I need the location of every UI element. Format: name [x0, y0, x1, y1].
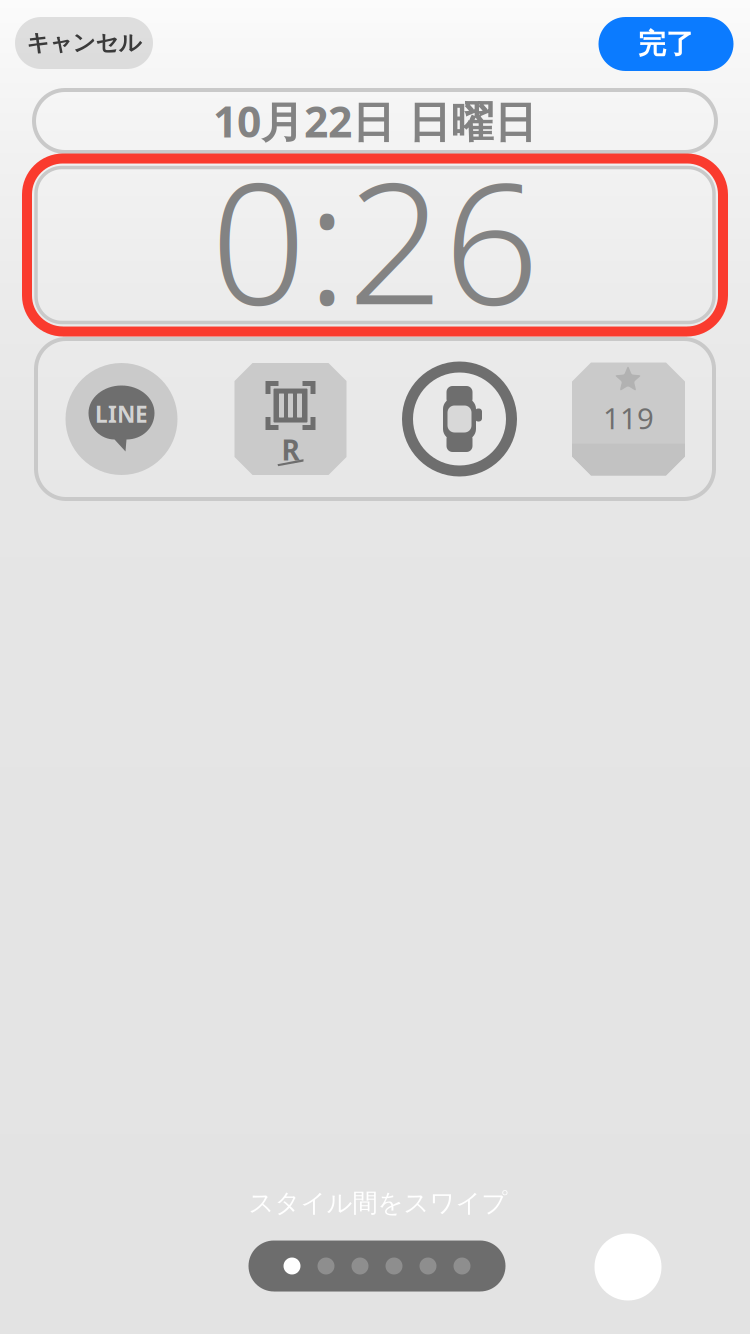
button[interactable]: 10月22日 日曜日	[34, 90, 716, 152]
staticText: LINE	[95, 399, 148, 429]
button[interactable]: Apple Watch	[375, 339, 544, 499]
button[interactable]: 完了	[598, 17, 733, 71]
staticText: R	[281, 431, 299, 468]
button[interactable]: Rakuten Point Card	[206, 339, 375, 499]
button[interactable]: Color	[594, 1233, 661, 1300]
button[interactable]: LINE	[37, 339, 206, 499]
staticText: 10月22日 日曜日	[213, 93, 537, 149]
button[interactable]: 0:26	[27, 158, 723, 331]
staticText: スタイル間をスワイプ	[248, 1187, 507, 1218]
button[interactable]: Emergency 119	[544, 339, 713, 499]
staticText: 完了	[638, 27, 694, 61]
staticText: 0:26	[210, 127, 539, 351]
staticText: キャンセル	[26, 29, 141, 57]
button[interactable]: キャンセル	[15, 17, 153, 69]
staticText: 119	[603, 398, 654, 437]
